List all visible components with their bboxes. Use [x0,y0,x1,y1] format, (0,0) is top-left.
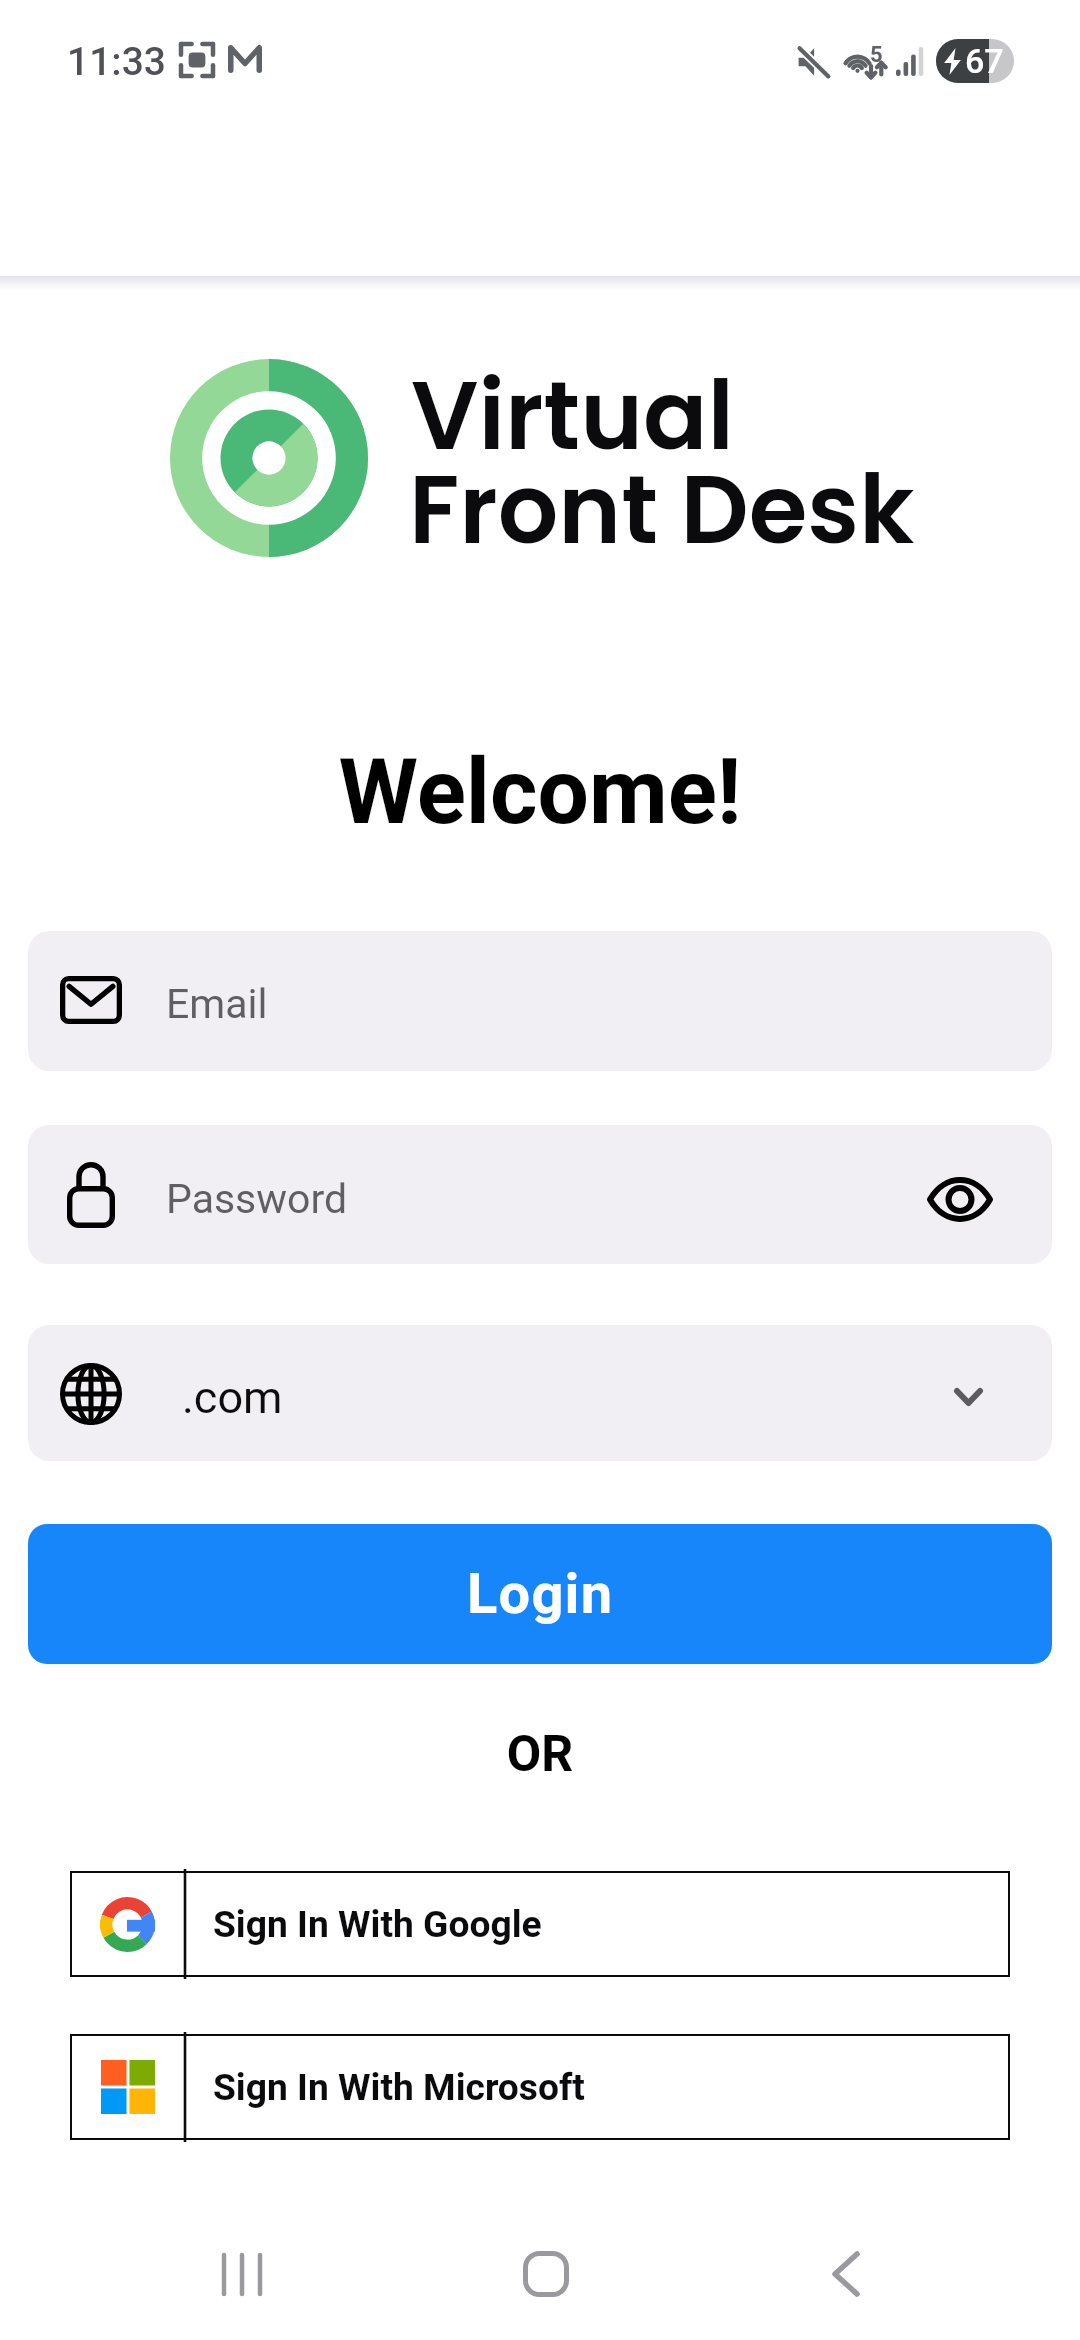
staticText: Login [467,1561,614,1627]
button[interactable]: Login [28,1524,1052,1664]
staticText: .com [182,1371,283,1424]
staticText: 11:33 [67,39,167,85]
button[interactable]: Show password [884,1130,1036,1264]
button[interactable]: Password [28,1125,1052,1264]
button[interactable]: Email [28,931,1052,1071]
staticText: OR [0,1725,1080,1784]
button[interactable]: Select domain [896,1329,1040,1461]
button[interactable]: Home [486,2208,606,2340]
staticText: Email [166,980,268,1028]
staticText: Sign In With Google [213,1902,542,1946]
staticText: Password [166,1175,348,1223]
staticText: Welcome! [0,739,1080,846]
button[interactable]: Sign In With Google [70,1871,1010,1977]
staticText: Front Desk [409,443,915,576]
button[interactable]: Back [786,2208,906,2340]
button[interactable]: Sign In With Microsoft [70,2034,1010,2140]
button[interactable]: .com [28,1325,1052,1461]
staticText: 5 [870,42,883,68]
staticText: Sign In With Microsoft [213,2065,585,2109]
button[interactable]: Recent apps [182,2208,302,2340]
staticText: Virtual [411,349,734,482]
staticText: 67 [965,41,1004,81]
